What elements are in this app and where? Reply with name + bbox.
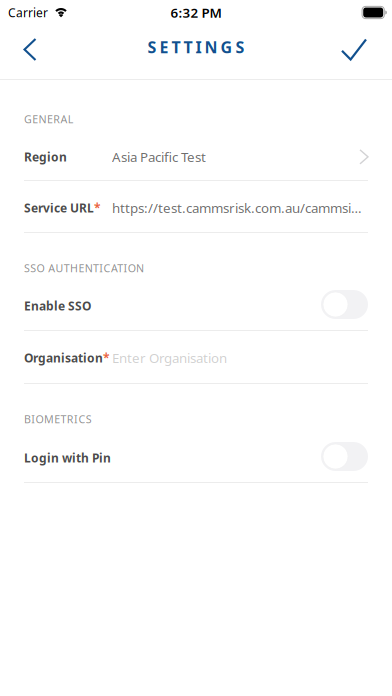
staticText: Region <box>24 149 67 165</box>
button[interactable]: Login with Pin <box>321 442 368 471</box>
button[interactable]: Enable SSO <box>321 290 368 319</box>
staticText: * <box>103 350 110 366</box>
staticText: Enable SSO <box>24 298 91 314</box>
staticText: Enter Organisation <box>112 349 227 367</box>
staticText: S E T T I N G S <box>147 36 244 58</box>
staticText: Service URL <box>24 200 94 216</box>
staticText: SSO AUTHENTICATION <box>24 261 144 275</box>
staticText: * <box>94 200 101 216</box>
button[interactable]: Region <box>24 148 368 180</box>
staticText: Login with Pin <box>24 450 111 466</box>
button[interactable]: Save <box>332 27 376 71</box>
staticText: Carrier <box>8 4 48 20</box>
staticText: BIOMETRICS <box>24 412 92 426</box>
staticText: Organisation <box>24 350 103 366</box>
staticText: Asia Pacific Test <box>112 148 206 166</box>
staticText: 6:32 PM <box>170 4 221 21</box>
button[interactable]: Back <box>8 27 52 71</box>
staticText: https://test.cammsrisk.com.au/cammsinci.… <box>112 199 368 217</box>
staticText: GENERAL <box>24 112 74 126</box>
